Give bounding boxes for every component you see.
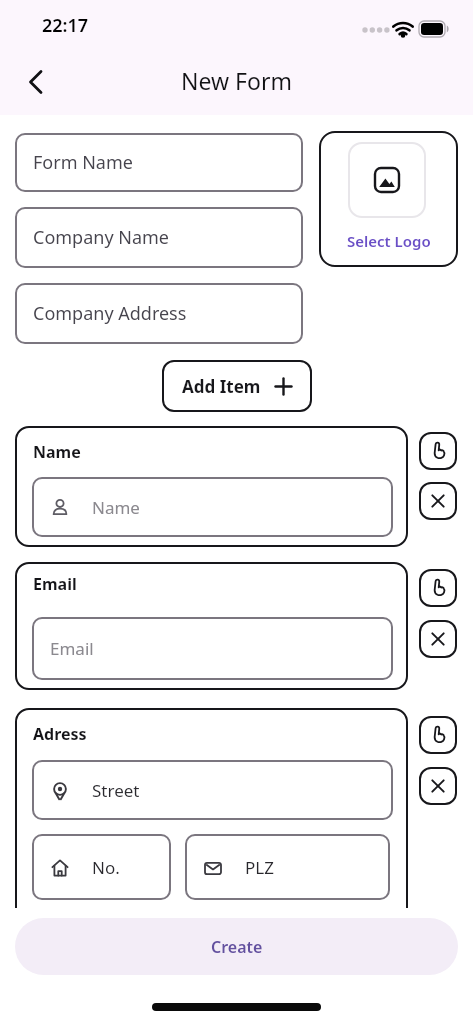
staticText: Name (92, 496, 140, 519)
staticText: Company Address (33, 301, 187, 326)
button[interactable] (419, 432, 457, 470)
button[interactable]: PLZ (185, 834, 390, 900)
button[interactable]: Street (32, 760, 393, 820)
button[interactable]: Select Logo (319, 131, 458, 267)
button[interactable] (16, 62, 56, 102)
staticText: PLZ (245, 856, 274, 879)
button[interactable]: Form Name (15, 133, 303, 192)
staticText: Email (33, 573, 77, 595)
staticText: Create (211, 936, 263, 958)
button[interactable] (419, 716, 457, 754)
button[interactable] (419, 767, 457, 805)
button[interactable]: Name (32, 477, 393, 537)
button[interactable] (419, 482, 457, 520)
button[interactable]: Company Address (15, 283, 303, 344)
button[interactable]: Company Name (15, 207, 303, 268)
staticText: Street (92, 779, 140, 802)
staticText: Adress (33, 723, 87, 745)
staticText: Form Name (33, 150, 133, 175)
staticText: Name (33, 441, 81, 463)
staticText: New Form (181, 65, 292, 96)
button[interactable] (419, 620, 457, 658)
staticText: Company Name (33, 225, 170, 250)
button[interactable]: Add Item (162, 360, 312, 412)
button[interactable] (419, 569, 457, 607)
button[interactable]: Email (32, 617, 393, 680)
staticText: Add Item (182, 375, 261, 398)
staticText: No. (92, 856, 120, 879)
button[interactable]: No. (32, 834, 171, 900)
button[interactable]: Create (15, 918, 458, 975)
staticText: Email (50, 637, 94, 660)
staticText: Select Logo (347, 231, 431, 251)
staticText: 22:17 (42, 13, 89, 38)
